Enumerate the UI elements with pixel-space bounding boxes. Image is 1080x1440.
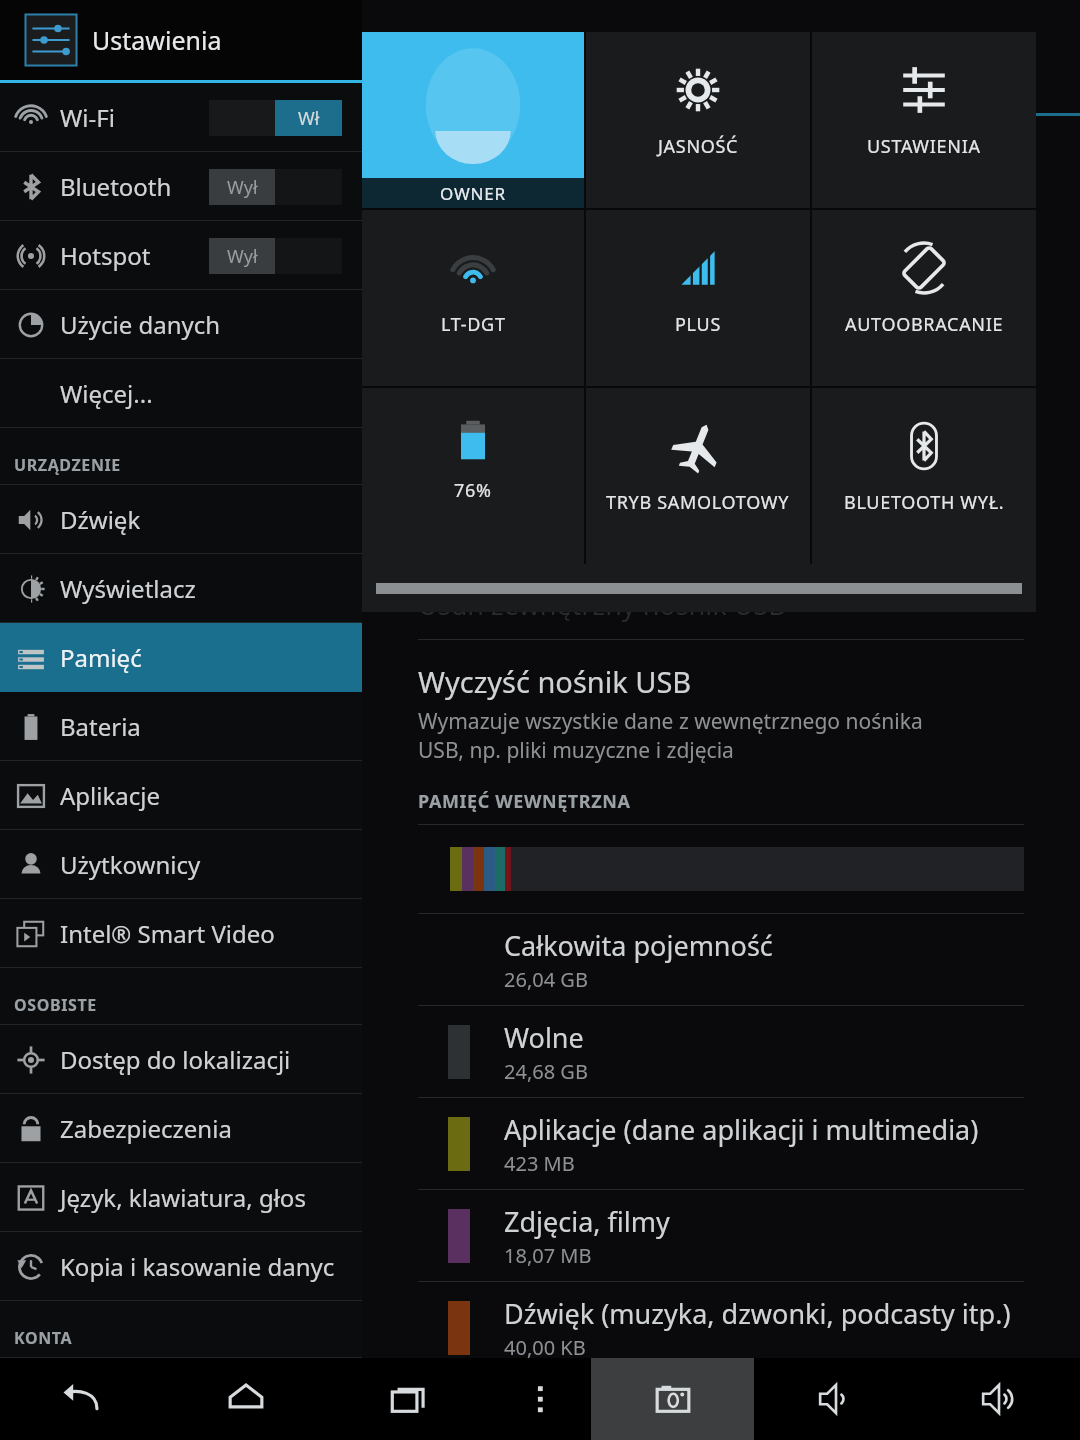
staticText: 76% [454,478,492,503]
staticText: PLUS [675,312,721,337]
button[interactable]: Aplikacje [0,761,362,830]
button[interactable]: LT-DGT [362,210,584,386]
staticText: Dostęp do lokalizacji [60,1043,291,1076]
staticText: Więcej... [60,377,153,410]
button[interactable]: USTAWIENIA [812,32,1036,208]
staticText: OWNER [440,182,506,205]
button[interactable]: Aplikacje (dane aplikacji i multimedia) [418,1098,1024,1190]
button[interactable]: AUTOOBRACANIE [812,210,1036,386]
button[interactable]: Dostęp do lokalizacji [0,1025,362,1094]
button[interactable]: Back [0,1358,164,1440]
button[interactable]: Zabezpieczenia [0,1094,362,1163]
staticText: Całkowita pojemność [504,927,773,964]
staticText: 26,04 GB [504,966,588,993]
staticText: PAMIĘĆ WEWNĘTRZNA [418,789,631,814]
button[interactable]: Home [164,1358,327,1440]
button[interactable]: Intel® Smart Video [0,899,362,968]
button[interactable]: Wi-Fi [0,83,362,152]
button[interactable]: Dźwięk [0,485,362,554]
button[interactable]: Screenshot [591,1358,754,1440]
button[interactable]: Dźwięk (muzyka, dzwonki, podcasty itp.) [418,1282,1024,1374]
staticText: Ustawienia [92,23,222,57]
staticText: Hotspot [60,239,151,272]
staticText: Aplikacje [60,779,161,812]
button[interactable]: Wł [209,100,342,136]
button[interactable]: Pobrane [418,1374,1024,1440]
staticText: USB, np. pliki muzyczne i zdjęcia [418,736,734,765]
button[interactable]: 76% [362,388,584,564]
button[interactable]: Całkowita pojemność [418,914,1024,1006]
staticText: Pobrane [504,1389,611,1426]
button[interactable]: Więcej... [0,359,362,428]
staticText: 24,68 GB [504,1058,588,1085]
staticText: Pamięć [60,641,142,674]
button[interactable]: Wyświetlacz [0,554,362,623]
staticText: Wymazuje wszystkie dane z wewnętrznego n… [418,707,923,736]
staticText: Intel® Smart Video [60,917,275,950]
staticText: Kopia i kasowanie danyc [60,1250,335,1283]
staticText: Wyczyść nośnik USB [418,662,692,701]
button[interactable]: Bateria [0,692,362,761]
staticText: Wolne [504,1019,584,1056]
staticText: JASNOŚĆ [658,134,739,159]
staticText: Język, klawiatura, głos [60,1181,306,1214]
staticText: Zabezpieczenia [60,1112,232,1145]
button[interactable]: Wył [209,238,342,274]
button[interactable]: Volume down [754,1358,917,1440]
button[interactable]: TRYB SAMOLOTOWY [586,388,810,564]
staticText: 18,07 MB [504,1242,592,1269]
staticText: Użytkownicy [60,848,201,881]
button[interactable]: OWNER [362,32,584,208]
button[interactable]: Kopia i kasowanie danyc [0,1232,362,1301]
staticText: Wł [298,106,320,131]
button[interactable]: Wył [209,169,342,205]
button[interactable]: Volume up [917,1358,1080,1440]
button[interactable]: More options [490,1358,591,1440]
button[interactable]: Recents [327,1358,490,1440]
button[interactable]: BLUETOOTH WYŁ. [812,388,1036,564]
staticText: OSOBISTE [14,994,97,1016]
button[interactable]: JASNOŚĆ [586,32,810,208]
staticText: Dźwięk (muzyka, dzwonki, podcasty itp.) [504,1295,1011,1332]
staticText: Usuń zewnętrzny nośnik USB [418,586,786,623]
staticText: Bateria [60,710,141,743]
button[interactable]: Pamięć [0,623,362,692]
staticText: Wył [227,244,258,269]
staticText: Zdjęcia, filmy [504,1203,670,1240]
staticText: Dźwięk [60,503,141,536]
button[interactable]: Hotspot [0,221,362,290]
button[interactable]: Zdjęcia, filmy [418,1190,1024,1282]
staticText: USTAWIENIA [867,134,981,159]
staticText: 423 MB [504,1150,575,1177]
button[interactable]: Język, klawiatura, głos [0,1163,362,1232]
button[interactable]: Bluetooth [0,152,362,221]
button[interactable]: Użycie danych [0,290,362,359]
staticText: URZĄDZENIE [14,454,121,476]
staticText: KONTA [14,1327,73,1349]
staticText: TRYB SAMOLOTOWY [606,490,790,515]
staticText: Wyświetlacz [60,572,196,605]
button[interactable]: Wolne [418,1006,1024,1098]
staticText: Aplikacje (dane aplikacji i multimedia) [504,1111,979,1148]
staticText: Bluetooth [60,170,172,203]
staticText: LT-DGT [441,312,506,337]
staticText: Wi-Fi [60,101,115,134]
button[interactable]: Użytkownicy [0,830,362,899]
staticText: BLUETOOTH WYŁ. [844,490,1005,515]
button[interactable]: PLUS [586,210,810,386]
staticText: Użycie danych [60,308,221,341]
staticText: AUTOOBRACANIE [845,312,1004,337]
staticText: Wył [227,175,258,200]
staticText: 40,00 KB [504,1334,586,1361]
